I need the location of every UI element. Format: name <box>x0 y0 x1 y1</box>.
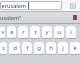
staticText: f <box>26 44 29 52</box>
button[interactable]: e <box>7 26 16 38</box>
staticText: Jerusalem <box>0 2 27 9</box>
staticText: d <box>13 44 17 52</box>
button[interactable]: k <box>70 42 80 54</box>
button[interactable]: j <box>58 42 68 54</box>
staticText: usalem" <box>0 14 22 21</box>
button[interactable]: f <box>22 42 32 54</box>
button[interactable]: h <box>46 42 56 54</box>
staticText: v <box>1 28 5 36</box>
button[interactable]: u <box>54 26 64 38</box>
staticText: g <box>37 44 41 52</box>
button[interactable]: i <box>66 26 76 38</box>
staticText: y <box>45 28 49 36</box>
staticText: k <box>73 44 77 52</box>
button[interactable]: s <box>0 42 7 54</box>
staticText: r <box>22 28 25 36</box>
button[interactable]: usalem" <box>0 12 80 23</box>
button[interactable]: y <box>42 26 52 38</box>
staticText: s <box>2 44 5 52</box>
button[interactable]: t <box>30 26 40 38</box>
staticText: e <box>10 28 14 36</box>
staticText: j <box>62 44 64 52</box>
button[interactable]: r <box>18 26 28 38</box>
button[interactable]: g <box>34 42 44 54</box>
staticText: t <box>34 28 37 36</box>
button[interactable]: Bookmarks <box>70 3 76 9</box>
staticText: u <box>57 28 61 36</box>
staticText: h <box>49 44 53 52</box>
button[interactable]: Jerusalem <box>0 1 62 10</box>
button[interactable]: d <box>9 42 20 54</box>
staticText: i <box>70 28 72 36</box>
button[interactable]: v <box>0 26 5 38</box>
